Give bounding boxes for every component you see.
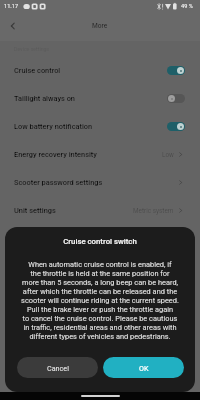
button[interactable]: Low battery notification [0,112,200,140]
staticText: Cruise control [14,66,61,75]
staticText: Cancel [47,364,69,372]
staticText: More [92,22,108,30]
button[interactable]: Cancel [17,357,98,378]
staticText: 49 % [181,3,193,10]
button[interactable]: Cruise control [0,56,200,84]
staticText: When automatic cruise control is enabled… [11,260,189,341]
staticText: Energy recovery intensity [14,150,97,159]
button[interactable]: Off [167,94,185,103]
staticText: Low [162,151,174,159]
button[interactable]: OK [103,357,184,378]
staticText: 11.17 [4,3,19,10]
staticText: Metric system [133,207,174,215]
button[interactable]: Taillight always on [0,84,200,112]
button[interactable]: Back [0,13,26,39]
button[interactable]: Energy recovery intensity [0,140,200,168]
staticText: Cruise control switch [5,237,195,246]
staticText: OK [139,364,149,372]
button[interactable]: Unit settings [0,196,200,224]
button[interactable]: Scooter password settings [0,168,200,196]
button[interactable]: On [167,122,185,131]
button[interactable]: On [167,66,185,75]
staticText: Scooter password settings [14,178,103,187]
staticText: Taillight always on [14,94,75,103]
staticText: Unit settings [14,206,56,215]
staticText: Low battery notification [14,122,93,131]
